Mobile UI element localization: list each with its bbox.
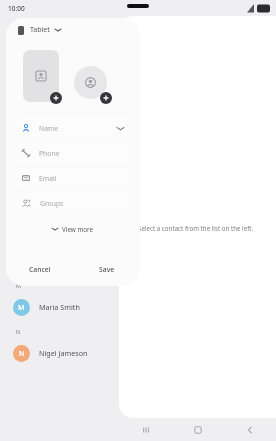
button[interactable]: N (0, 340, 119, 366)
staticText: Phone (39, 149, 60, 158)
staticText: Groups (40, 199, 64, 208)
staticText: N (19, 349, 25, 359)
button[interactable]: Recents (119, 418, 172, 441)
button[interactable]: View more (6, 222, 140, 236)
button[interactable]: Add (100, 92, 112, 104)
button[interactable]: Tablet (6, 18, 61, 42)
staticText: Tablet (30, 25, 50, 35)
staticText: Maria Smith (39, 302, 80, 312)
staticText: N (16, 328, 21, 335)
button[interactable]: Name (13, 118, 133, 138)
button[interactable]: Back (224, 418, 276, 441)
staticText: M (18, 303, 25, 313)
staticText: Nigel Jameson (39, 348, 88, 358)
button[interactable]: Home (172, 418, 224, 441)
staticText: 10:00 (8, 4, 25, 13)
staticText: Name (39, 124, 59, 133)
staticText: View more (62, 225, 94, 234)
staticText: Save (99, 265, 115, 274)
button[interactable]: Groups (13, 193, 133, 213)
staticText: Email (39, 174, 57, 183)
button[interactable]: Add photo (23, 50, 59, 102)
button[interactable]: Add (50, 92, 62, 104)
button[interactable]: Save (73, 254, 140, 284)
button[interactable]: M (0, 294, 119, 320)
staticText: M (16, 282, 21, 289)
staticText: Select a contact from the list on the le… (138, 224, 254, 232)
button[interactable]: Cancel (6, 254, 73, 284)
staticText: Cancel (29, 265, 51, 274)
button[interactable]: Add avatar (74, 66, 107, 99)
button[interactable]: Email (13, 168, 133, 188)
button[interactable]: Phone (13, 143, 133, 163)
